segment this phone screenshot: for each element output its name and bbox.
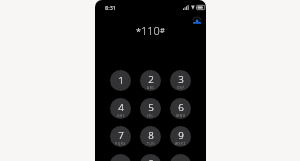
button[interactable]: 2 bbox=[140, 70, 161, 91]
staticText: JKL bbox=[147, 114, 154, 118]
staticText: 6 bbox=[178, 101, 184, 114]
staticText: * bbox=[136, 25, 141, 37]
button[interactable]: 6 bbox=[170, 98, 191, 119]
button[interactable]: SIM selection bbox=[192, 16, 202, 26]
staticText: 3 bbox=[178, 73, 184, 86]
button[interactable]: # bbox=[170, 154, 191, 161]
button[interactable]: 8 bbox=[140, 126, 161, 147]
button[interactable]: 0 bbox=[140, 154, 161, 161]
staticText: 8 bbox=[148, 129, 154, 142]
staticText: 5 bbox=[148, 101, 154, 114]
button[interactable]: 1 bbox=[110, 70, 131, 91]
button[interactable]: * bbox=[95, 23, 206, 37]
button[interactable]: 4 bbox=[110, 98, 131, 119]
staticText: 1 bbox=[118, 74, 124, 87]
staticText: 0 bbox=[148, 157, 154, 161]
button[interactable]: 9 bbox=[170, 126, 191, 147]
staticText: 110 bbox=[141, 23, 160, 37]
button[interactable]: 7 bbox=[110, 126, 131, 147]
staticText: ABC bbox=[147, 86, 155, 90]
staticText: 7 bbox=[118, 129, 124, 142]
staticText: 4 bbox=[118, 101, 124, 114]
button[interactable]: 5 bbox=[140, 98, 161, 119]
button[interactable]: 3 bbox=[170, 70, 191, 91]
staticText: MNO bbox=[176, 114, 186, 118]
staticText: 2 bbox=[148, 73, 154, 86]
staticText: WXYZ bbox=[175, 142, 186, 146]
staticText: 8:31 bbox=[105, 4, 116, 11]
staticText: 9 bbox=[178, 129, 184, 142]
staticText: PQRS bbox=[115, 142, 126, 146]
button[interactable]: * bbox=[110, 154, 131, 161]
staticText: DEF bbox=[177, 86, 185, 90]
staticText: GHI bbox=[117, 114, 125, 118]
staticText: # bbox=[160, 25, 165, 35]
staticText: TUV bbox=[147, 142, 155, 146]
